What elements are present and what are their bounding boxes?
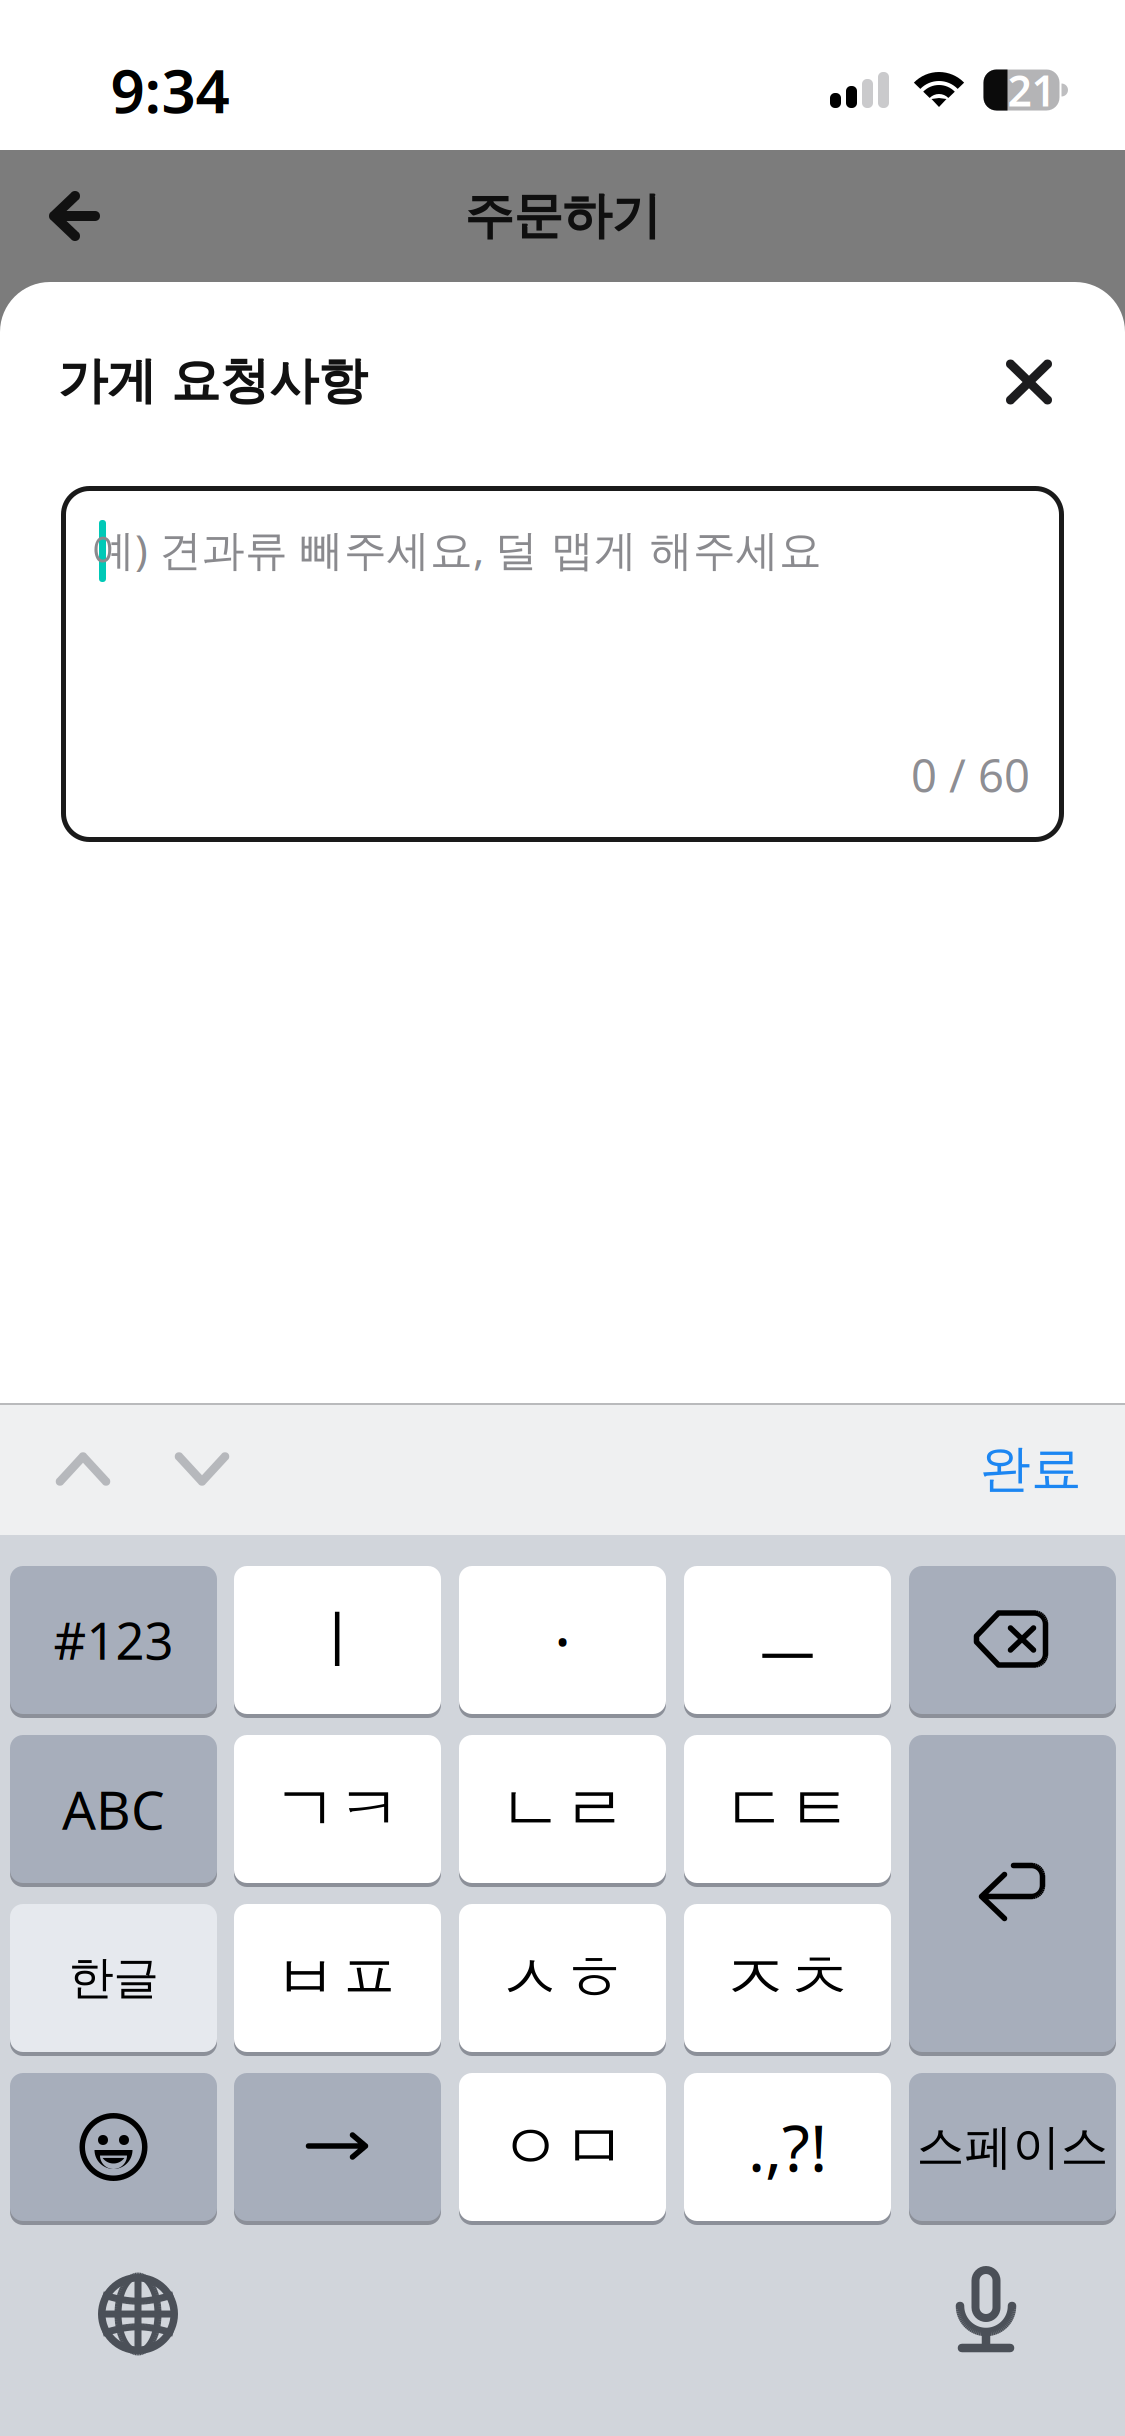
button[interactable]: ㅣ: [234, 1566, 441, 1718]
button[interactable]: Back: [0, 150, 149, 282]
button[interactable]: ㄱㅋ: [234, 1735, 441, 1887]
staticText: 9:34: [110, 50, 229, 130]
staticText: ㄷㅌ: [723, 1770, 851, 1848]
staticText: ㅇㅁ: [498, 2108, 626, 2186]
staticText: ㅡ: [755, 1601, 819, 1679]
button[interactable]: ㅈㅊ: [684, 1904, 891, 2056]
button[interactable]: ㄴㄹ: [459, 1735, 666, 1887]
button[interactable]: .,?!: [684, 2073, 891, 2225]
button[interactable]: Delete: [909, 1566, 1116, 1718]
staticText: 주문하기: [464, 186, 660, 246]
staticText: ㅂㅍ: [273, 1939, 401, 2017]
staticText: ·: [554, 1597, 571, 1682]
button[interactable]: ·: [459, 1566, 666, 1718]
staticText: 21: [1007, 62, 1055, 118]
button[interactable]: 한글: [10, 1904, 217, 2056]
staticText: ㅅㅎ: [498, 1939, 626, 2017]
staticText: ㄴㄹ: [498, 1770, 626, 1848]
button[interactable]: ㅅㅎ: [459, 1904, 666, 2056]
staticText: 스페이스: [916, 2117, 1108, 2176]
staticText: ABC: [62, 1774, 165, 1844]
button[interactable]: Change keyboard: [78, 2254, 198, 2374]
staticText: 예) 견과류 빼주세요, 덜 맵게 해주세요: [92, 521, 822, 577]
button[interactable]: ABC: [10, 1735, 217, 1887]
button[interactable]: Next: [234, 2073, 441, 2225]
button[interactable]: ㄷㅌ: [684, 1735, 891, 1887]
button[interactable]: Emoji: [10, 2073, 217, 2225]
button[interactable]: Next field: [157, 1403, 247, 1535]
staticText: 가게 요청사항: [58, 351, 367, 411]
staticText: ㄱㅋ: [273, 1770, 401, 1848]
button[interactable]: #123: [10, 1566, 217, 1718]
button[interactable]: Dictate: [926, 2250, 1046, 2370]
staticText: .,?!: [748, 2104, 827, 2189]
button[interactable]: Previous field: [38, 1403, 128, 1535]
staticText: 0 / 60: [911, 745, 1030, 805]
button[interactable]: ㅂㅍ: [234, 1904, 441, 2056]
button[interactable]: Return: [909, 1735, 1116, 2056]
staticText: 한글: [68, 1950, 158, 2006]
button[interactable]: ㅇㅁ: [459, 2073, 666, 2225]
button[interactable]: Close: [969, 322, 1089, 442]
staticText: ㅈㅊ: [723, 1939, 851, 2017]
staticText: 완료: [980, 1438, 1082, 1500]
button[interactable]: ㅡ: [684, 1566, 891, 1718]
button[interactable]: 완료: [951, 1403, 1111, 1535]
staticText: ㅣ: [305, 1601, 369, 1679]
staticText: #123: [53, 1606, 173, 1674]
button[interactable]: 스페이스: [909, 2073, 1116, 2225]
